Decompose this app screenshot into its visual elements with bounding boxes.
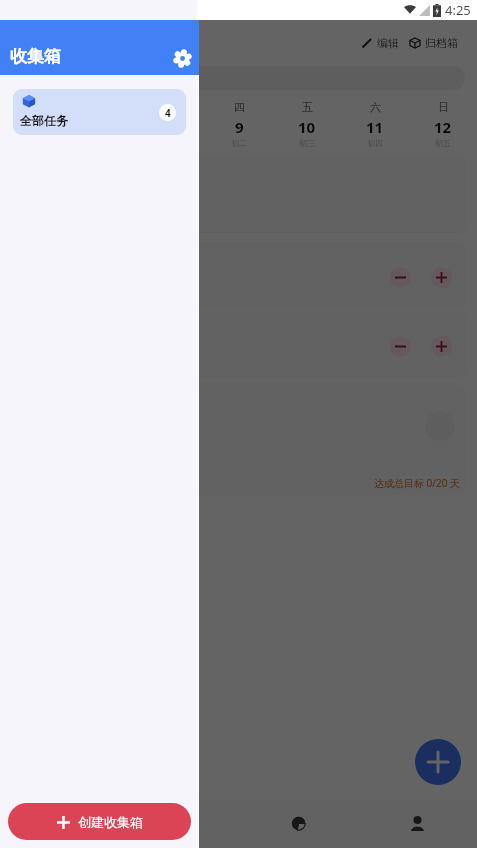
button[interactable]: Profile <box>358 799 477 848</box>
button[interactable]: 三 <box>137 100 205 148</box>
staticText: 搜一搜 <box>38 71 71 85</box>
staticText: 11 <box>366 117 384 137</box>
button[interactable]: Decrease <box>390 336 411 357</box>
button[interactable]: 达成总目标 0/20 天 <box>10 385 467 495</box>
staticText: 创建收集箱 <box>78 814 143 830</box>
staticText: 四 <box>234 100 245 114</box>
staticText: 9 <box>235 117 244 137</box>
button[interactable]: Increase <box>431 336 452 357</box>
button[interactable]: 创建收集箱 <box>8 803 191 840</box>
button[interactable]: 四 <box>205 100 273 148</box>
staticText: 五 <box>302 100 313 114</box>
button[interactable]: 编辑 <box>357 36 403 50</box>
button[interactable]: Decrease <box>390 267 411 288</box>
button[interactable]: Increase <box>431 267 452 288</box>
button[interactable]: 归档箱 <box>405 36 462 50</box>
button[interactable]: 一 <box>0 100 69 148</box>
staticText: 日 <box>438 100 449 114</box>
button[interactable]: Statistics <box>239 799 358 848</box>
staticText: 三 <box>166 100 177 114</box>
button[interactable]: Habits <box>120 799 239 848</box>
staticText: 12 <box>434 117 452 137</box>
button[interactable]: Add <box>415 739 461 785</box>
button[interactable]: Decrease <box>10 312 467 378</box>
button[interactable] <box>10 155 467 233</box>
button[interactable]: Tasks <box>0 799 120 848</box>
staticText: 达成总目标 0/20 天 <box>374 476 461 490</box>
staticText: 8 <box>167 117 176 137</box>
staticText: 初四 <box>367 138 383 148</box>
staticText: 编辑 <box>377 36 399 50</box>
button[interactable]: 全部任务 <box>13 89 186 135</box>
staticText: 4:25 <box>445 1 471 19</box>
staticText: 一 <box>29 100 40 114</box>
staticText: 六 <box>370 100 381 114</box>
button[interactable]: 搜一搜 <box>12 66 465 90</box>
staticText: 10 <box>298 117 316 137</box>
button[interactable]: 六 <box>341 100 409 148</box>
button[interactable]: 二 <box>69 100 137 148</box>
staticText: 7 <box>99 117 108 137</box>
staticText: 6 <box>30 117 39 137</box>
staticText: 4 <box>165 106 171 120</box>
staticText: 归档箱 <box>425 36 458 50</box>
staticText: 初三 <box>299 138 315 148</box>
button[interactable]: 日 <box>409 100 477 148</box>
button[interactable]: Decrease <box>10 242 467 308</box>
button[interactable]: 五 <box>273 100 341 148</box>
staticText: 收集箱 <box>10 46 61 67</box>
staticText: 初二 <box>231 138 247 148</box>
button[interactable]: Settings <box>168 44 196 72</box>
staticText: 全部任务 <box>20 113 68 128</box>
staticText: 初五 <box>435 138 451 148</box>
